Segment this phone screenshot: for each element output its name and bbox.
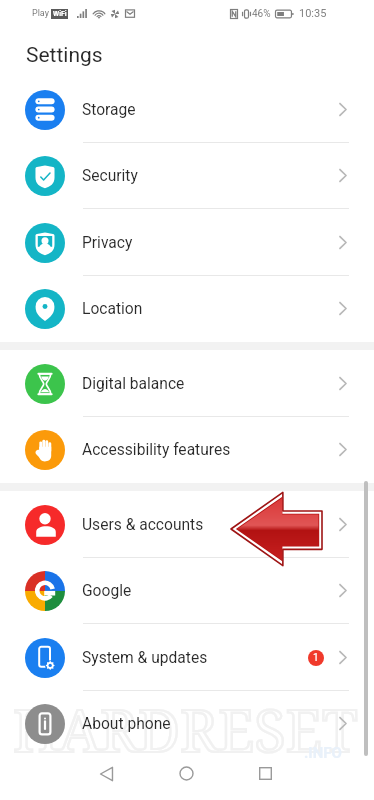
staticText: Google	[82, 582, 132, 600]
staticText: .INFO	[304, 744, 342, 762]
button[interactable]: Home	[168, 755, 205, 792]
staticText: Users & accounts	[82, 516, 204, 534]
staticText: Digital balance	[82, 375, 185, 393]
staticText: Privacy	[82, 234, 133, 252]
staticText: 1	[313, 652, 319, 664]
button[interactable]: About phone	[0, 690, 374, 757]
staticText: System & updates	[82, 649, 208, 667]
staticText: Location	[82, 300, 143, 318]
button[interactable]: Google	[0, 557, 374, 624]
staticText: Accessibility features	[82, 441, 231, 459]
button[interactable]: Accessibility features	[0, 416, 374, 483]
staticText: About phone	[82, 715, 171, 733]
staticText: Security	[82, 167, 138, 185]
button[interactable]: Security	[0, 142, 374, 209]
staticText: Settings	[26, 43, 103, 68]
button[interactable]: Location	[0, 275, 374, 342]
staticText: Storage	[82, 101, 136, 119]
button[interactable]: Back	[88, 755, 125, 792]
button[interactable]: Privacy	[0, 209, 374, 276]
staticText: 10:35	[299, 7, 327, 20]
button[interactable]: System & updates	[0, 624, 374, 691]
button[interactable]: Storage	[0, 76, 374, 143]
staticText: Play	[32, 8, 49, 19]
button[interactable]: Users & accounts	[0, 491, 374, 558]
staticText: WiFi	[53, 10, 67, 18]
button[interactable]: Digital balance	[0, 350, 374, 417]
button[interactable]: Recents	[247, 755, 284, 792]
staticText: HARDRESET	[13, 690, 358, 769]
staticText: 46%	[252, 8, 271, 20]
